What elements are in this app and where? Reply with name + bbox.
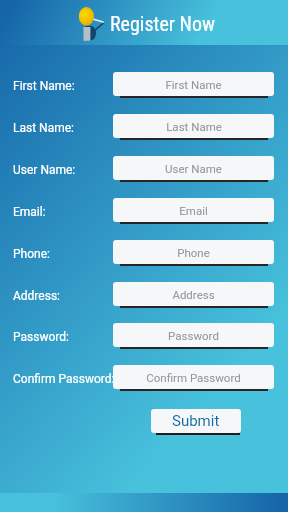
staticText: Confirm Password: bbox=[13, 372, 115, 386]
staticText: Confirm Password bbox=[146, 371, 241, 384]
button[interactable]: Phone bbox=[113, 240, 274, 264]
button[interactable]: Submit bbox=[151, 409, 241, 433]
button[interactable]: Confirm Password bbox=[113, 365, 274, 389]
staticText: Email: bbox=[13, 205, 46, 219]
button[interactable]: Email bbox=[113, 198, 274, 222]
staticText: Address bbox=[172, 288, 215, 301]
button[interactable]: Address bbox=[113, 282, 274, 306]
staticText: Submit bbox=[172, 412, 220, 430]
staticText: Register Now bbox=[110, 12, 215, 35]
staticText: Last Name: bbox=[13, 121, 74, 135]
button[interactable]: First Name bbox=[113, 72, 274, 96]
staticText: Phone: bbox=[13, 247, 50, 261]
staticText: First Name: bbox=[13, 79, 75, 93]
staticText: First Name bbox=[165, 78, 222, 91]
staticText: Last Name bbox=[166, 120, 222, 133]
staticText: Email bbox=[179, 204, 208, 217]
staticText: Phone bbox=[177, 246, 210, 259]
staticText: User Name: bbox=[13, 163, 76, 177]
staticText: Password bbox=[168, 329, 219, 342]
button[interactable]: Register bbox=[78, 4, 104, 42]
button[interactable]: Last Name bbox=[113, 114, 274, 138]
staticText: Address: bbox=[13, 289, 60, 303]
button[interactable]: Password bbox=[113, 323, 274, 347]
staticText: Password: bbox=[13, 330, 69, 344]
staticText: User Name bbox=[165, 162, 222, 175]
button[interactable]: User Name bbox=[113, 156, 274, 180]
